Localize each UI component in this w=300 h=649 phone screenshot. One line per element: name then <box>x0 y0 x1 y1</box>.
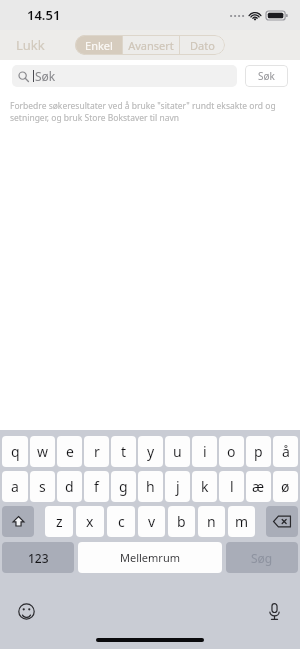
button[interactable]: j <box>165 471 190 502</box>
button[interactable]: q <box>2 436 28 467</box>
button[interactable]: z <box>45 506 73 537</box>
button[interactable]: Enkel <box>75 35 122 55</box>
staticText: Søg <box>251 550 273 566</box>
staticText: t <box>121 442 127 461</box>
staticText: Søk <box>258 69 275 83</box>
button[interactable]: l <box>219 471 244 502</box>
staticText: p <box>254 442 263 461</box>
button[interactable]: h <box>138 471 163 502</box>
staticText: f <box>94 477 99 496</box>
button[interactable]: k <box>192 471 217 502</box>
button[interactable]: c <box>107 506 135 537</box>
button[interactable]: w <box>30 436 55 467</box>
staticText: a <box>11 477 19 496</box>
staticText: l <box>230 477 234 496</box>
staticText: d <box>65 477 74 496</box>
button[interactable]: n <box>198 506 225 537</box>
button[interactable]: Backspace <box>266 506 298 537</box>
button[interactable]: Dato <box>180 35 225 55</box>
button[interactable]: ø <box>273 471 298 502</box>
button[interactable]: b <box>168 506 195 537</box>
button[interactable]: e <box>57 436 82 467</box>
button[interactable]: p <box>246 436 271 467</box>
staticText: 123 <box>28 550 49 566</box>
button[interactable]: s <box>30 471 55 502</box>
button[interactable]: r <box>84 436 109 467</box>
staticText: i <box>203 442 207 461</box>
button[interactable]: Søg <box>226 542 298 573</box>
staticText: c <box>118 512 125 531</box>
staticText: ø <box>281 477 290 496</box>
button[interactable]: Shift <box>2 506 34 537</box>
button[interactable]: Avansert <box>123 35 179 55</box>
button[interactable]: 123 <box>2 542 74 573</box>
staticText: Søk <box>35 68 56 84</box>
staticText: s <box>39 477 46 496</box>
staticText: m <box>235 512 249 531</box>
staticText: å <box>282 442 290 461</box>
staticText: w <box>37 442 49 461</box>
staticText: Forbedre søkeresultater ved å bruke "sit… <box>10 100 280 124</box>
button[interactable]: v <box>138 506 165 537</box>
staticText: æ <box>252 477 265 496</box>
staticText: o <box>227 442 236 461</box>
button[interactable]: a <box>2 471 28 502</box>
staticText: y <box>147 442 155 461</box>
button[interactable]: g <box>111 471 136 502</box>
button[interactable]: æ <box>246 471 271 502</box>
staticText: k <box>201 477 209 496</box>
button[interactable]: y <box>138 436 163 467</box>
button[interactable]: o <box>219 436 244 467</box>
staticText: x <box>86 512 94 531</box>
button[interactable]: å <box>273 436 298 467</box>
staticText: j <box>176 477 180 496</box>
staticText: e <box>66 442 74 461</box>
button[interactable]: i <box>192 436 217 467</box>
staticText: Enkel <box>85 38 113 53</box>
staticText: h <box>146 477 155 496</box>
staticText: g <box>119 477 128 496</box>
staticText: z <box>56 512 63 531</box>
staticText: Mellemrum <box>120 550 180 565</box>
staticText: v <box>148 512 156 531</box>
staticText: 14.51 <box>27 6 61 24</box>
staticText: Dato <box>190 38 215 53</box>
staticText: b <box>177 512 186 531</box>
staticText: Lukk <box>16 36 45 54</box>
button[interactable]: Dictation <box>262 599 286 623</box>
button[interactable]: f <box>84 471 109 502</box>
button[interactable]: Lukk <box>0 32 55 58</box>
staticText: u <box>173 442 182 461</box>
button[interactable]: m <box>228 506 255 537</box>
staticText: q <box>11 442 20 461</box>
button[interactable]: t <box>111 436 136 467</box>
staticText: n <box>207 512 216 531</box>
button[interactable]: Mellemrum <box>78 542 222 573</box>
button[interactable]: u <box>165 436 190 467</box>
staticText: Avansert <box>128 38 174 53</box>
button[interactable]: x <box>76 506 104 537</box>
button[interactable]: Emoji <box>14 599 38 623</box>
button[interactable]: Søk <box>245 65 288 87</box>
button[interactable]: Søk <box>12 65 237 87</box>
button[interactable]: d <box>57 471 82 502</box>
staticText: r <box>94 442 100 461</box>
